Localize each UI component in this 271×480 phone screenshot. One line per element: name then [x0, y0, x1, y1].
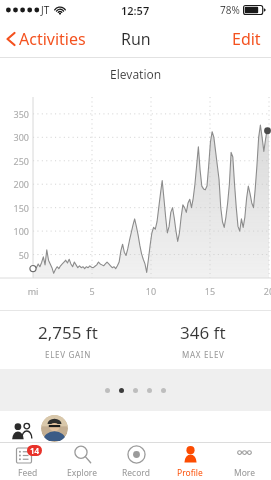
staticText: 50 [2, 249, 29, 261]
button[interactable]: Activities [0, 23, 96, 55]
button[interactable]: Athletes [9, 416, 35, 442]
staticText: 300 [2, 131, 29, 143]
staticText: MAX ELEV [182, 349, 225, 360]
staticText: 200 [2, 178, 29, 190]
staticText: Profile [177, 467, 203, 479]
staticText: 346 ft [180, 321, 226, 344]
staticText: Edit [232, 28, 261, 50]
staticText: 100 [2, 225, 29, 237]
button[interactable]: Athlete avatar [40, 414, 68, 442]
button[interactable]: 2,755 ft [0, 311, 135, 369]
button[interactable]: 14 [0, 443, 55, 480]
staticText: 20 [258, 285, 271, 297]
staticText: 350 [2, 108, 29, 120]
staticText: 150 [2, 202, 29, 214]
staticText: 78% [220, 3, 240, 17]
staticText: Elevation [110, 66, 162, 82]
staticText: 15 [199, 285, 221, 297]
staticText: Activities [19, 28, 86, 50]
button[interactable]: Profile [163, 443, 217, 480]
button[interactable]: 346 ft [135, 311, 271, 369]
button[interactable]: More [217, 443, 271, 480]
staticText: ELEV GAIN [45, 349, 91, 360]
button[interactable]: Edit [222, 21, 271, 57]
staticText: Feed [18, 467, 38, 479]
staticText: 2,755 ft [38, 321, 98, 344]
staticText: More [234, 467, 255, 479]
staticText: Explore [67, 467, 97, 479]
staticText: 10 [140, 285, 162, 297]
button[interactable]: Explore [55, 443, 109, 480]
staticText: 250 [2, 155, 29, 167]
staticText: mi [22, 285, 44, 297]
staticText: Record [122, 467, 150, 479]
staticText: 14 [30, 445, 40, 456]
staticText: Run [121, 28, 151, 50]
staticText: 5 [81, 285, 103, 297]
button[interactable]: Record [109, 443, 163, 480]
staticText: JT [41, 3, 50, 17]
staticText: 12:57 [121, 3, 150, 18]
